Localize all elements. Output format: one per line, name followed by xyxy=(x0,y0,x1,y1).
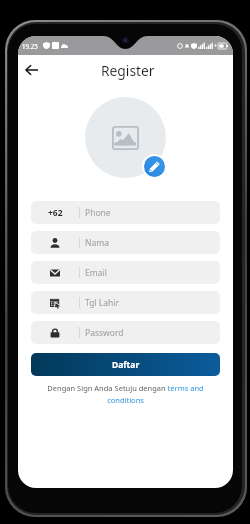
staticText: Password xyxy=(85,327,124,339)
button[interactable]: Daftar xyxy=(31,353,220,376)
button[interactable]: Back xyxy=(20,59,42,81)
button[interactable]: Tgl Lahir xyxy=(31,291,220,314)
staticText: Email xyxy=(85,267,107,279)
button[interactable]: Email xyxy=(31,261,220,284)
staticText: Nama xyxy=(85,237,109,249)
button[interactable]: Edit profile photo xyxy=(144,156,165,177)
staticText: Dengan Sign Anda Setuju dengan terms and… xyxy=(32,383,219,405)
button[interactable]: +62 xyxy=(31,201,220,224)
staticText: 19.25 xyxy=(22,42,38,50)
button[interactable]: Password xyxy=(31,321,220,344)
staticText: Daftar xyxy=(112,359,140,371)
button[interactable]: Nama xyxy=(31,231,220,254)
staticText: Phone xyxy=(85,207,111,219)
staticText: +62 xyxy=(48,207,63,219)
staticText: Register xyxy=(101,61,155,80)
staticText: Tgl Lahir xyxy=(85,297,119,309)
